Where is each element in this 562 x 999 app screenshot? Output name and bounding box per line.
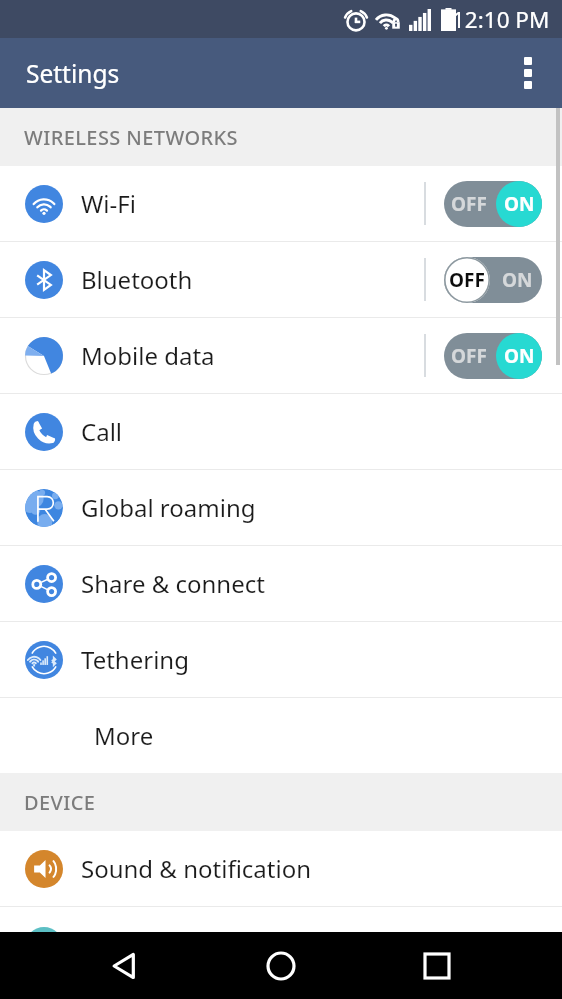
button[interactable]: Home (250, 935, 312, 997)
button[interactable]: Global roaming (0, 470, 562, 545)
staticText: OFF (451, 343, 487, 369)
staticText: Wi-Fi (81, 187, 136, 220)
staticText: Share & connect (81, 567, 265, 600)
staticText: Call (81, 415, 123, 448)
staticText: Bluetooth (81, 263, 193, 296)
button[interactable]: Bluetooth (0, 242, 562, 317)
staticText: Global roaming (81, 491, 256, 524)
staticText: DEVICE (24, 789, 96, 816)
button[interactable]: Wi-Fi (0, 166, 562, 241)
staticText: 12:10 PM (452, 4, 550, 35)
staticText: Settings (26, 57, 120, 90)
button[interactable]: Toggle off (444, 257, 542, 303)
button[interactable]: Mobile data (0, 318, 562, 393)
staticText: Tethering (81, 643, 189, 676)
button[interactable]: Share & connect (0, 546, 562, 621)
staticText: Mobile data (81, 339, 215, 372)
button[interactable]: Sound & notification (0, 831, 562, 906)
button[interactable]: Tethering (0, 622, 562, 697)
button[interactable]: Back (94, 935, 156, 997)
staticText: More (94, 719, 154, 752)
staticText: OFF (451, 191, 487, 217)
button[interactable]: More options (493, 38, 562, 108)
button[interactable]: More (0, 698, 562, 773)
button[interactable]: Display (0, 908, 562, 932)
staticText: Sound & notification (81, 852, 312, 885)
staticText: ON (504, 191, 535, 217)
button[interactable]: Toggle on (444, 181, 542, 227)
staticText: WIRELESS NETWORKS (24, 124, 238, 151)
button[interactable]: Recents (406, 935, 468, 997)
staticText: OFF (449, 267, 485, 293)
button[interactable]: Toggle on (444, 333, 542, 379)
staticText: ON (504, 343, 535, 369)
button[interactable]: Call (0, 394, 562, 469)
staticText: ON (502, 267, 533, 293)
